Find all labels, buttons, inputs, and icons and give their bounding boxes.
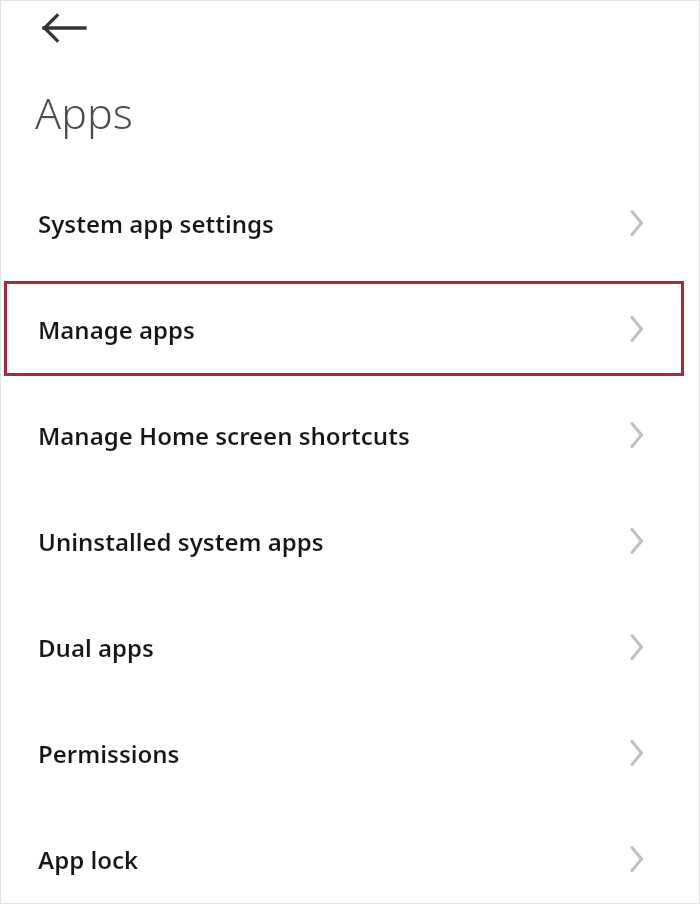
button[interactable]: Back (26, 4, 98, 52)
button[interactable]: Dual apps (0, 594, 700, 700)
staticText: System app settings (38, 207, 274, 240)
button[interactable]: Manage apps (0, 276, 700, 382)
button[interactable]: Permissions (0, 700, 700, 806)
staticText: Manage Home screen shortcuts (38, 419, 410, 452)
staticText: App lock (38, 843, 139, 876)
button[interactable]: Manage Home screen shortcuts (0, 382, 700, 488)
staticText: Manage apps (38, 313, 195, 346)
staticText: Dual apps (38, 631, 154, 664)
staticText: Permissions (38, 737, 180, 770)
button[interactable]: System app settings (0, 170, 700, 276)
staticText: Apps (35, 83, 133, 142)
button[interactable]: Uninstalled system apps (0, 488, 700, 594)
staticText: Uninstalled system apps (38, 525, 324, 558)
button[interactable]: App lock (0, 806, 700, 904)
